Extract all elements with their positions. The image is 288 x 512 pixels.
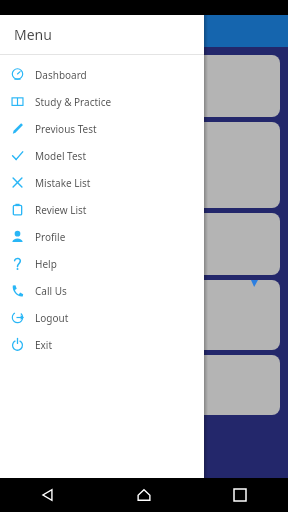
button[interactable]: Back (0, 478, 96, 512)
staticText: Profile (35, 230, 66, 244)
staticText: Model Test (35, 149, 86, 163)
staticText: Previous Test (35, 122, 97, 136)
button[interactable]: Help (0, 250, 204, 277)
staticText: Menu (14, 25, 52, 44)
staticText: Call Us (35, 284, 67, 298)
button[interactable]: Mistake List (0, 169, 204, 196)
button[interactable]: Logout (0, 304, 204, 331)
staticText: DOWNLOAD (19, 170, 60, 180)
staticText: Mistake List (35, 176, 91, 190)
button[interactable]: Model Test (0, 142, 204, 169)
staticText: Dashboard (35, 68, 87, 82)
button[interactable] (8, 55, 280, 117)
staticText: Logout (35, 311, 69, 325)
button[interactable]: DOWNLOAD (14, 168, 65, 182)
button[interactable] (8, 213, 280, 275)
staticText: Study & Practice (35, 95, 112, 109)
staticText: PURCHASE COURSE (19, 150, 84, 160)
button[interactable]: Previous Test (0, 115, 204, 142)
button[interactable]: PURCHASE COURSE (8, 122, 280, 208)
button[interactable]: Home (96, 478, 192, 512)
button[interactable] (8, 355, 280, 415)
button[interactable]: Profile (0, 223, 204, 250)
button[interactable]: Recents (192, 478, 288, 512)
button[interactable]: Exit (0, 331, 204, 358)
staticText: Help (35, 257, 57, 271)
staticText: Review List (35, 203, 87, 217)
staticText: Exit (35, 338, 53, 352)
button[interactable]: Review List (0, 196, 204, 223)
button[interactable]: PURCHASE COURSE (14, 148, 89, 162)
button[interactable] (8, 280, 280, 350)
button[interactable]: Study & Practice (0, 88, 204, 115)
button[interactable]: Dashboard (0, 61, 204, 88)
button[interactable]: Call Us (0, 277, 204, 304)
